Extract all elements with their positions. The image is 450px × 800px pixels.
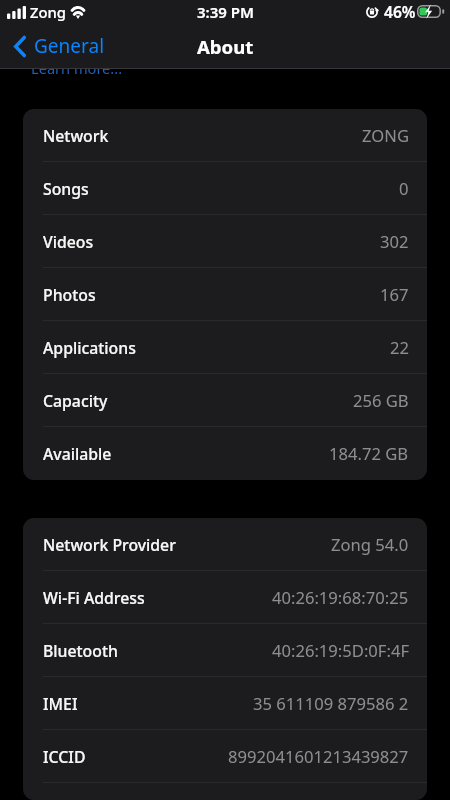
button[interactable]: Network	[23, 109, 427, 162]
button[interactable]: Applications	[23, 321, 427, 374]
staticText: Photos	[43, 284, 96, 306]
button[interactable]: Available	[23, 427, 427, 480]
staticText: ICCID	[43, 746, 86, 768]
staticText: Applications	[43, 337, 136, 359]
staticText: 8992041601213439827	[228, 745, 409, 768]
button[interactable]: Photos	[23, 268, 427, 321]
staticText: 40:26:19:68:70:25	[272, 586, 409, 609]
button[interactable]: Back to General	[0, 29, 111, 63]
staticText: 0	[399, 177, 409, 200]
staticText: 40:26:19:5D:0F:4F	[272, 639, 409, 662]
staticText: Capacity	[43, 390, 108, 412]
button[interactable]: Songs	[23, 162, 427, 215]
staticText: Network Provider	[43, 534, 176, 556]
staticText: 184.72 GB	[329, 442, 409, 465]
staticText: 256 GB	[353, 389, 409, 412]
button[interactable]: IMEI	[23, 677, 427, 730]
staticText: 35 611109 879586 2	[253, 692, 409, 715]
staticText: Network	[43, 125, 109, 147]
staticText: Zong	[30, 2, 66, 22]
staticText: 167	[380, 283, 409, 306]
button[interactable]: Videos	[23, 215, 427, 268]
button[interactable]: ICCID	[23, 730, 427, 783]
button[interactable]: Network Provider	[23, 518, 427, 571]
staticText: 22	[390, 336, 409, 359]
staticText: Zong 54.0	[331, 533, 409, 556]
staticText: Learn more...	[31, 58, 123, 78]
button[interactable]: Capacity	[23, 374, 427, 427]
staticText: Available	[43, 443, 112, 465]
staticText: Songs	[43, 178, 89, 200]
staticText: 3:39 PM	[197, 2, 254, 22]
staticText: 46%	[384, 1, 416, 22]
staticText: Wi-Fi Address	[43, 587, 145, 609]
button[interactable]: Bluetooth	[23, 624, 427, 677]
staticText: IMEI	[43, 693, 78, 715]
other: Back to General	[14, 36, 26, 57]
staticText: ZONG	[362, 124, 409, 147]
staticText: Bluetooth	[43, 640, 118, 662]
staticText: 302	[380, 230, 409, 253]
staticText: Videos	[43, 231, 94, 253]
staticText: About	[197, 34, 254, 59]
button[interactable]: Wi-Fi Address	[23, 571, 427, 624]
staticText: General	[34, 33, 105, 59]
